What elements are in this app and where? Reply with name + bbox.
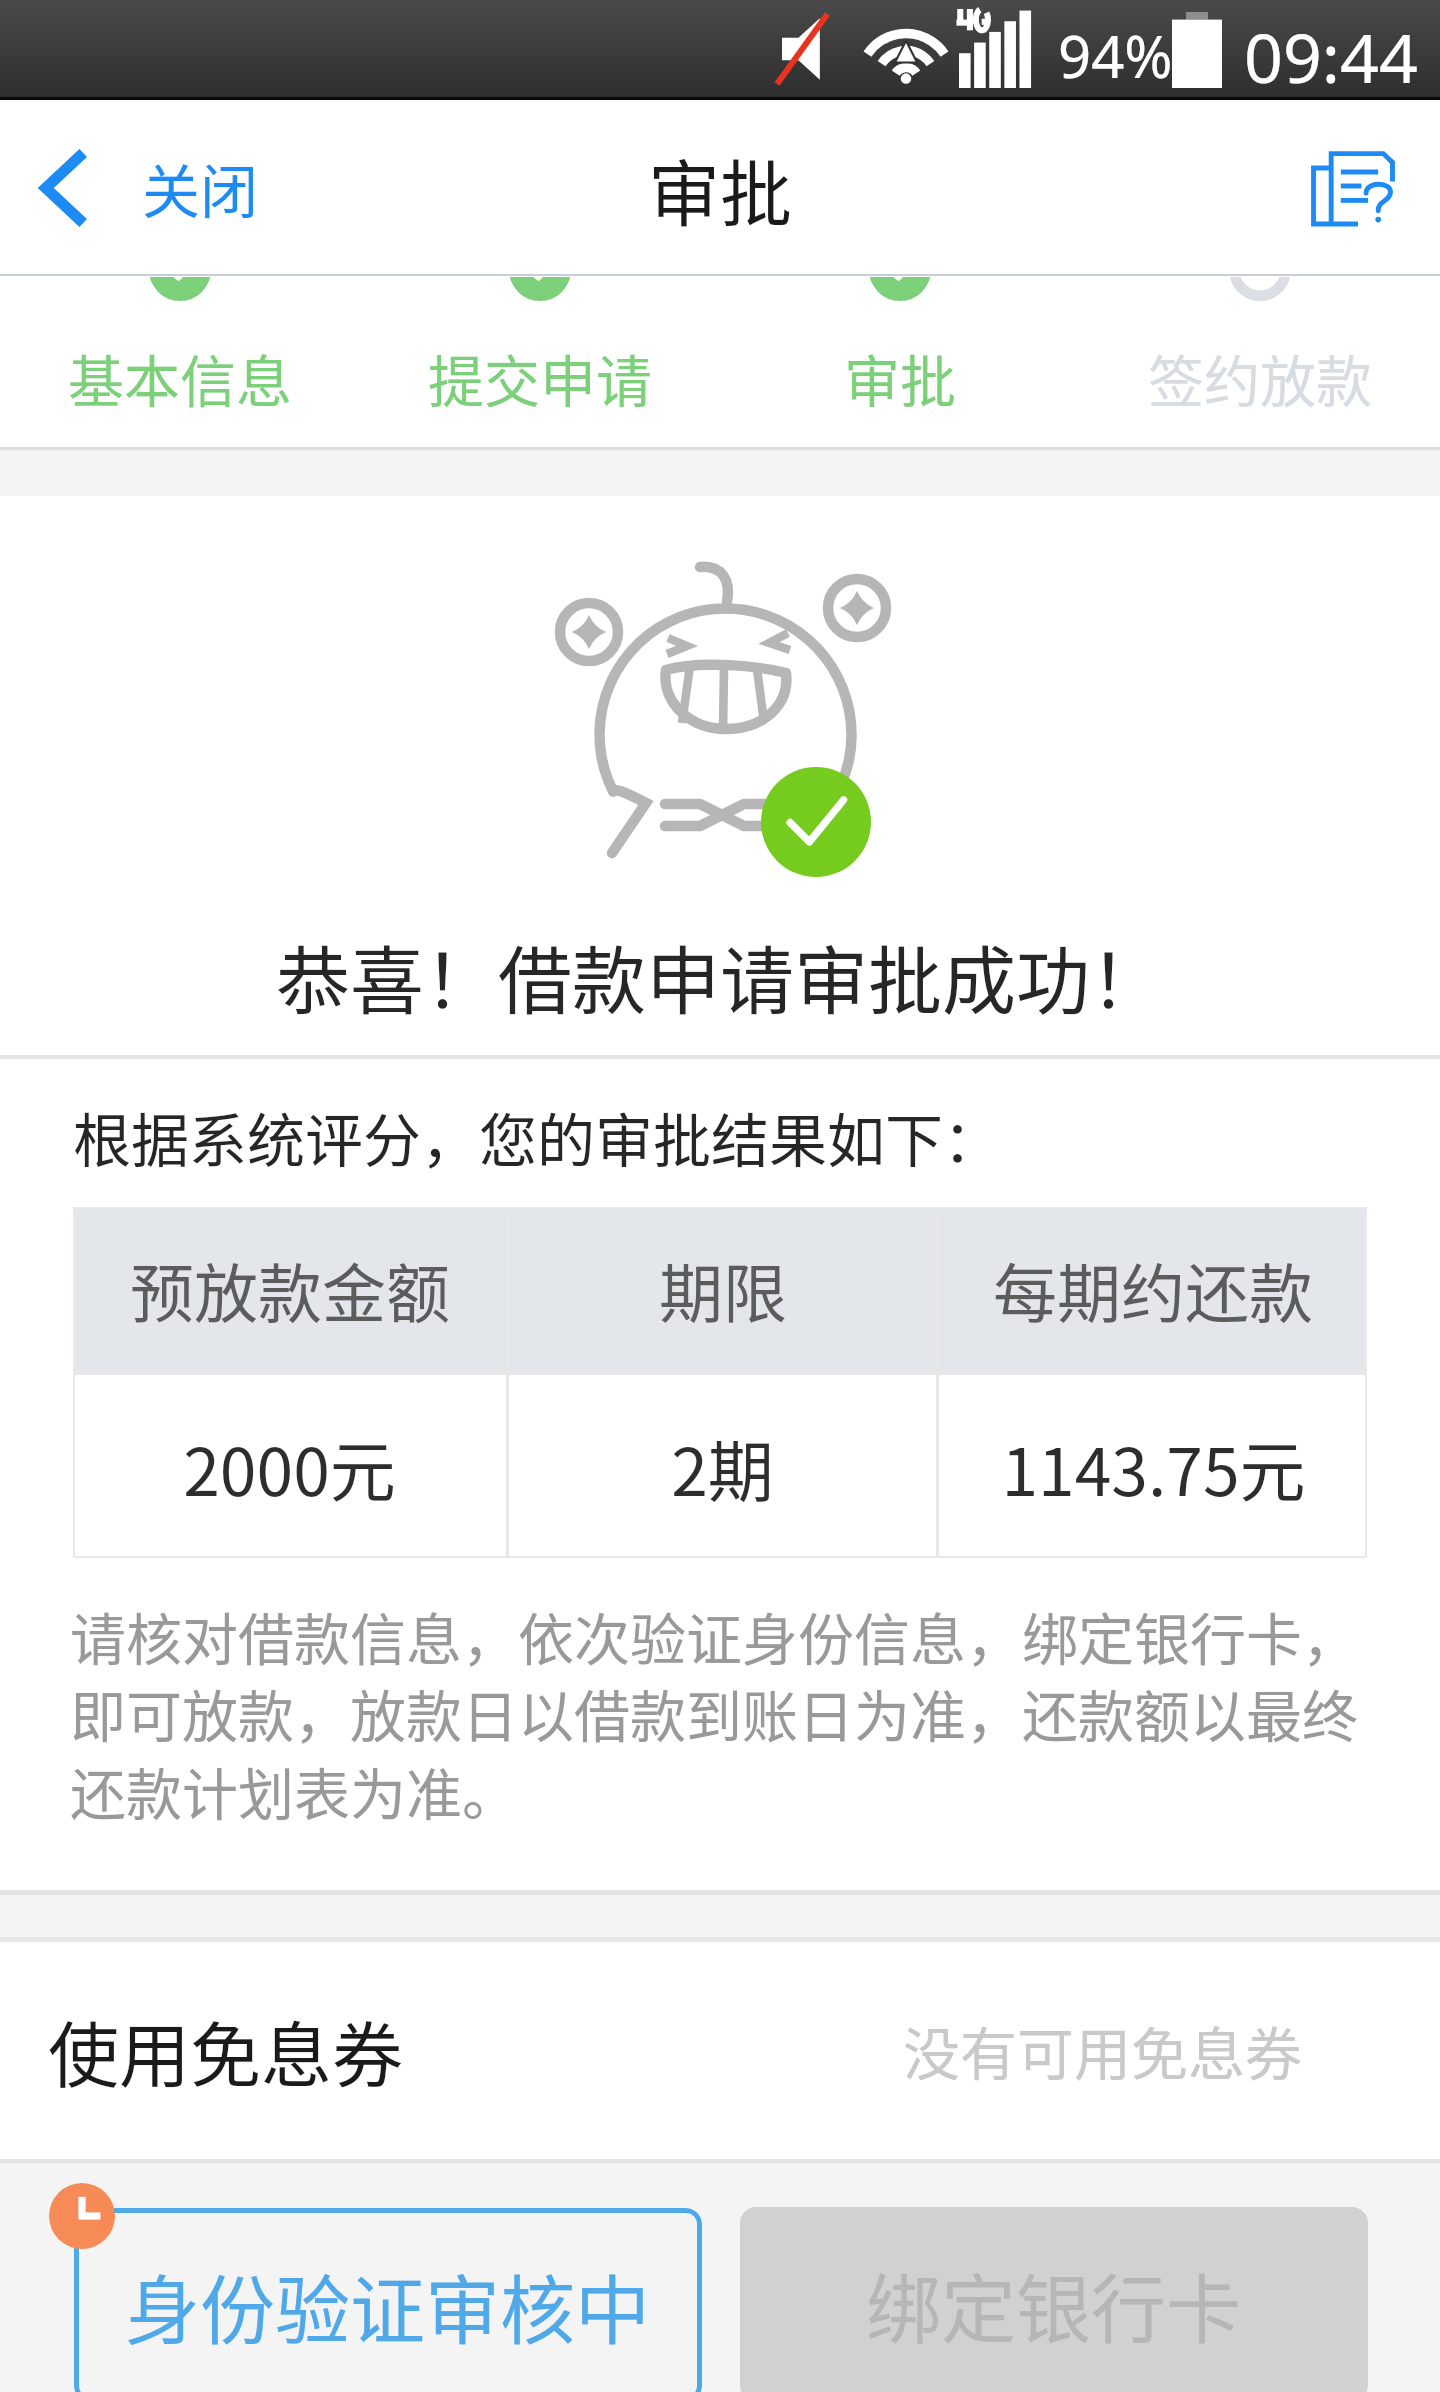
staticText: 身份验证审核中 <box>125 2251 651 2360</box>
button[interactable]: 关闭 <box>0 120 283 256</box>
staticText: 绑定银行卡 <box>866 2250 1242 2359</box>
staticText: 审批 <box>648 136 793 240</box>
staticText: 使用免息券 <box>48 1999 404 2102</box>
staticText: 没有可用免息券 <box>903 2009 1302 2092</box>
staticText: 09:44 <box>1244 10 1418 103</box>
staticText: 2000元 <box>183 1419 396 1515</box>
staticText: 1143.75元 <box>1001 1419 1306 1515</box>
button[interactable]: 绑定银行卡 <box>740 2207 1368 2392</box>
staticText: 请核对借款信息，依次验证身份信息，绑定银行卡，即可放款，放款日以借款到账日为准，… <box>70 1595 1388 1832</box>
staticText: 根据系统评分，您的审批结果如下： <box>73 1095 1002 1179</box>
staticText: 2期 <box>671 1419 774 1515</box>
staticText: 期限 <box>659 1243 787 1336</box>
button[interactable]: 使用免息券 <box>0 1942 1440 2159</box>
staticText: 审批 <box>844 337 956 418</box>
staticText: 每期约还款 <box>993 1243 1313 1336</box>
staticText: 关闭 <box>142 146 259 230</box>
staticText: 提交申请 <box>428 337 652 418</box>
staticText: 恭喜！借款申请审批成功！ <box>276 922 1164 1029</box>
staticText: 94% <box>1058 16 1173 95</box>
staticText: 基本信息 <box>68 337 292 418</box>
staticText: 签约放款 <box>1148 337 1372 418</box>
staticText: 预放款金额 <box>130 1243 450 1336</box>
button[interactable]: 身份验证审核中 <box>74 2208 702 2392</box>
button[interactable]: 常见问题 <box>1292 129 1414 247</box>
